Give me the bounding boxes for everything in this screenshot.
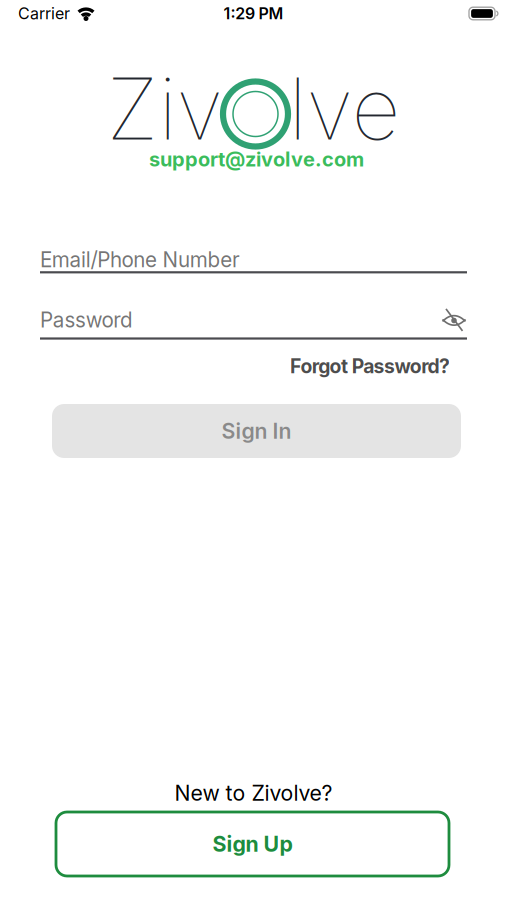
staticText: New to Zivolve?: [174, 780, 332, 806]
staticText: Ziv: [106, 57, 222, 160]
button[interactable]: Show password: [441, 309, 467, 334]
button[interactable]: Email/Phone Number: [40, 243, 467, 273]
button[interactable]: Sign Up: [56, 812, 449, 876]
staticText: Email/Phone Number: [40, 247, 240, 272]
staticText: 1:29 PM: [224, 4, 283, 23]
staticText: support@zivolve.com: [149, 147, 364, 171]
button[interactable]: Sign In: [52, 404, 461, 458]
staticText: Carrier: [18, 4, 70, 23]
staticText: lve: [288, 57, 400, 160]
button[interactable]: Password: [40, 309, 467, 340]
staticText: Password: [40, 307, 133, 332]
staticText: Sign In: [221, 418, 291, 444]
staticText: Sign Up: [212, 831, 292, 857]
button[interactable]: Forgot Password?: [290, 355, 450, 378]
staticText: Forgot Password?: [290, 355, 450, 378]
